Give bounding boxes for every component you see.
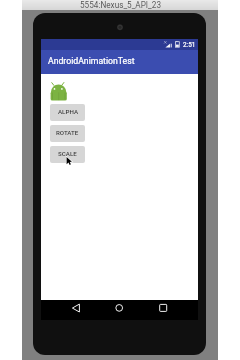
button[interactable]: SCALE xyxy=(50,146,85,163)
staticText: AndroidAnimationTest xyxy=(48,56,135,66)
button[interactable]: ALPHA xyxy=(50,104,85,121)
staticText: ROTATE xyxy=(56,129,79,136)
staticText: 2:51 xyxy=(183,41,196,49)
button[interactable]: ROTATE xyxy=(50,125,85,142)
staticText: 5554:Nexus_5_API_23 xyxy=(80,0,161,10)
button[interactable]: Home xyxy=(109,300,129,320)
button[interactable]: Recents xyxy=(153,300,173,320)
staticText: ALPHA xyxy=(58,108,78,115)
button[interactable]: Back xyxy=(66,300,86,320)
staticText: SCALE xyxy=(58,150,77,157)
